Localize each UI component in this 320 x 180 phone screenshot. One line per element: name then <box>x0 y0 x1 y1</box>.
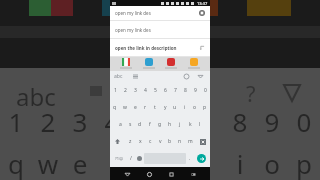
button[interactable]: More options <box>198 74 203 79</box>
staticText: 5 <box>154 87 157 94</box>
staticText: . <box>189 155 191 162</box>
button[interactable]: o <box>190 99 200 116</box>
button[interactable]: z <box>125 133 135 150</box>
staticText: t <box>154 104 156 111</box>
button[interactable]: h <box>165 116 175 133</box>
button[interactable]: Recents <box>166 169 176 179</box>
staticText: o <box>256 146 288 180</box>
staticText: 7 <box>174 87 177 94</box>
button[interactable]: open my link des <box>110 6 210 20</box>
button[interactable]: Change language <box>135 150 144 167</box>
button[interactable] <box>122 58 130 66</box>
button[interactable]: a <box>115 116 125 133</box>
button[interactable]: Search <box>197 154 206 163</box>
button[interactable]: r <box>140 99 150 116</box>
button[interactable]: m <box>185 133 195 150</box>
button[interactable]: t <box>150 99 160 116</box>
staticText: e <box>134 104 137 111</box>
staticText: n <box>178 138 182 145</box>
staticText <box>128 104 160 139</box>
staticText <box>160 104 192 139</box>
staticText: 6 <box>164 87 167 94</box>
staticText: open my link des <box>115 27 151 33</box>
button[interactable]: Clipboard <box>133 74 138 79</box>
staticText: 1 <box>0 104 32 139</box>
button[interactable]: p <box>200 99 210 116</box>
button[interactable]: Home <box>144 169 154 179</box>
staticText <box>128 146 160 180</box>
button[interactable]: i <box>180 99 190 116</box>
button[interactable]: g <box>155 116 165 133</box>
staticText: 8 <box>184 87 187 94</box>
staticText: b <box>168 138 172 145</box>
button[interactable]: c <box>145 133 155 150</box>
button[interactable]: u <box>170 99 180 116</box>
button[interactable] <box>190 58 198 66</box>
staticText: open the link in description <box>115 45 177 51</box>
staticText: q <box>113 104 117 111</box>
button[interactable]: Screenshot <box>188 169 198 179</box>
staticText: / <box>130 155 132 162</box>
button[interactable]: w <box>120 99 130 116</box>
staticText: u <box>173 104 177 111</box>
button[interactable]: s <box>125 116 135 133</box>
button[interactable]: x <box>135 133 145 150</box>
button[interactable]: f <box>145 116 155 133</box>
button[interactable]: e <box>130 99 140 116</box>
staticText: z <box>129 138 132 145</box>
button[interactable]: 8 <box>180 81 190 99</box>
button[interactable]: 4 <box>140 81 150 99</box>
button[interactable]: Emoji <box>184 74 189 79</box>
staticText: 4 <box>144 87 147 94</box>
button[interactable]: d <box>135 116 145 133</box>
button[interactable]: 5 <box>150 81 160 99</box>
button[interactable]: / <box>126 150 135 167</box>
button[interactable]: open the link in description <box>110 39 210 56</box>
button[interactable]: 7 <box>170 81 180 99</box>
staticText <box>160 146 192 180</box>
button[interactable] <box>145 58 153 66</box>
staticText: 2 <box>32 104 64 139</box>
button[interactable]: 0 <box>200 81 210 99</box>
staticText <box>192 146 224 180</box>
staticText: 3 <box>64 104 96 139</box>
button[interactable]: Back <box>122 169 132 179</box>
staticText: d <box>138 121 142 128</box>
staticText: c <box>149 138 152 145</box>
staticText: x <box>139 138 142 145</box>
staticText: ?1☺ <box>115 156 124 161</box>
button[interactable]: 2 <box>120 81 130 99</box>
button[interactable]: q <box>110 99 120 116</box>
staticText: y <box>164 104 167 111</box>
button[interactable]: Clear query <box>199 10 205 16</box>
button[interactable]: Backspace <box>195 133 210 150</box>
staticText: i <box>184 104 186 111</box>
staticText <box>96 146 128 180</box>
button[interactable]: l <box>195 116 205 133</box>
staticText: 13:37 <box>197 1 208 6</box>
button[interactable]: 6 <box>160 81 170 99</box>
button[interactable]: 3 <box>130 81 140 99</box>
button[interactable]: 1 <box>110 81 120 99</box>
button[interactable]: 9 <box>190 81 200 99</box>
button[interactable]: Shift <box>110 133 125 150</box>
staticText: 9 <box>256 104 288 139</box>
staticText: 0 <box>288 104 320 139</box>
staticText: open my link des <box>115 10 151 16</box>
button[interactable]: b <box>165 133 175 150</box>
button[interactable]: j <box>175 116 185 133</box>
staticText: abc <box>16 80 56 113</box>
staticText: w <box>32 146 64 180</box>
button[interactable]: v <box>155 133 165 150</box>
button[interactable] <box>167 58 175 66</box>
staticText: 4 <box>96 104 128 139</box>
button[interactable]: y <box>160 99 170 116</box>
staticText <box>192 104 224 139</box>
button[interactable]: n <box>175 133 185 150</box>
staticText: 3 <box>134 87 137 94</box>
button[interactable]: abc <box>114 73 123 80</box>
button[interactable]: open my link des <box>110 21 210 38</box>
button[interactable]: ?1☺ <box>112 150 126 167</box>
button[interactable]: k <box>185 116 195 133</box>
